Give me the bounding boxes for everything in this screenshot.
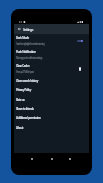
button[interactable]: Privacy Policy — [14, 85, 89, 95]
button[interactable]: Recents — [63, 153, 77, 164]
button[interactable]: Push Notification — [14, 48, 89, 62]
staticText: Manage push notification settings — [16, 56, 43, 60]
button[interactable]: Additional permission — [14, 113, 89, 123]
button[interactable]: Rate us — [14, 95, 89, 104]
staticText: Push Notification — [16, 50, 36, 54]
staticText: Switch to nightlight for a better viewin… — [16, 42, 45, 46]
button[interactable]: Clear search history — [14, 76, 89, 85]
staticText: About — [16, 126, 24, 130]
staticText: Additional permission — [16, 116, 41, 120]
button[interactable]: About — [14, 123, 89, 132]
staticText: Settings — [23, 27, 34, 31]
button[interactable]: Back — [25, 153, 39, 164]
staticText: Dark Mode — [16, 36, 29, 40]
staticText: Clear Cache — [16, 64, 30, 68]
staticText: Clear search history — [16, 79, 38, 83]
staticText: Rate us — [16, 98, 25, 102]
button[interactable]: Home — [45, 153, 59, 164]
button[interactable]: Share to friends — [14, 104, 89, 113]
button[interactable]: Clear Cache — [14, 62, 89, 76]
staticText: Share to friends — [16, 107, 34, 111]
button[interactable]: Toggle — [79, 67, 81, 71]
button[interactable]: Dark Mode — [14, 34, 89, 48]
button[interactable]: Dark mode toggle — [77, 40, 83, 42]
button[interactable]: Back — [16, 24, 22, 34]
staticText: Free up 27 MB of space — [16, 70, 34, 74]
staticText: Privacy Policy — [16, 88, 31, 92]
